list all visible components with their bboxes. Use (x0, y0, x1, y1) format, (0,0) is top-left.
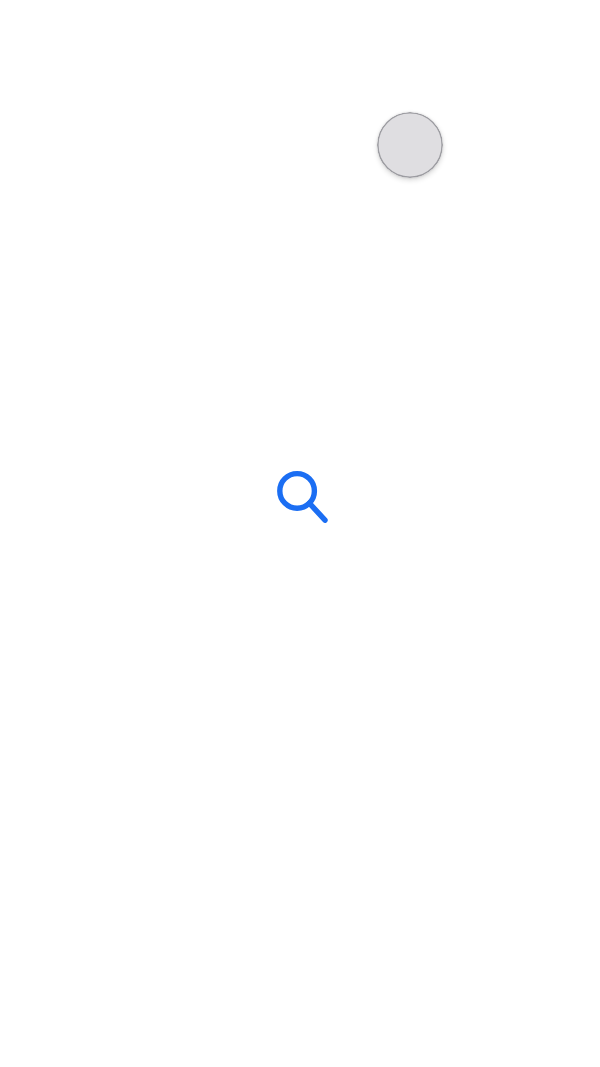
button[interactable]: Account (377, 112, 443, 178)
button[interactable]: Search (270, 464, 334, 528)
